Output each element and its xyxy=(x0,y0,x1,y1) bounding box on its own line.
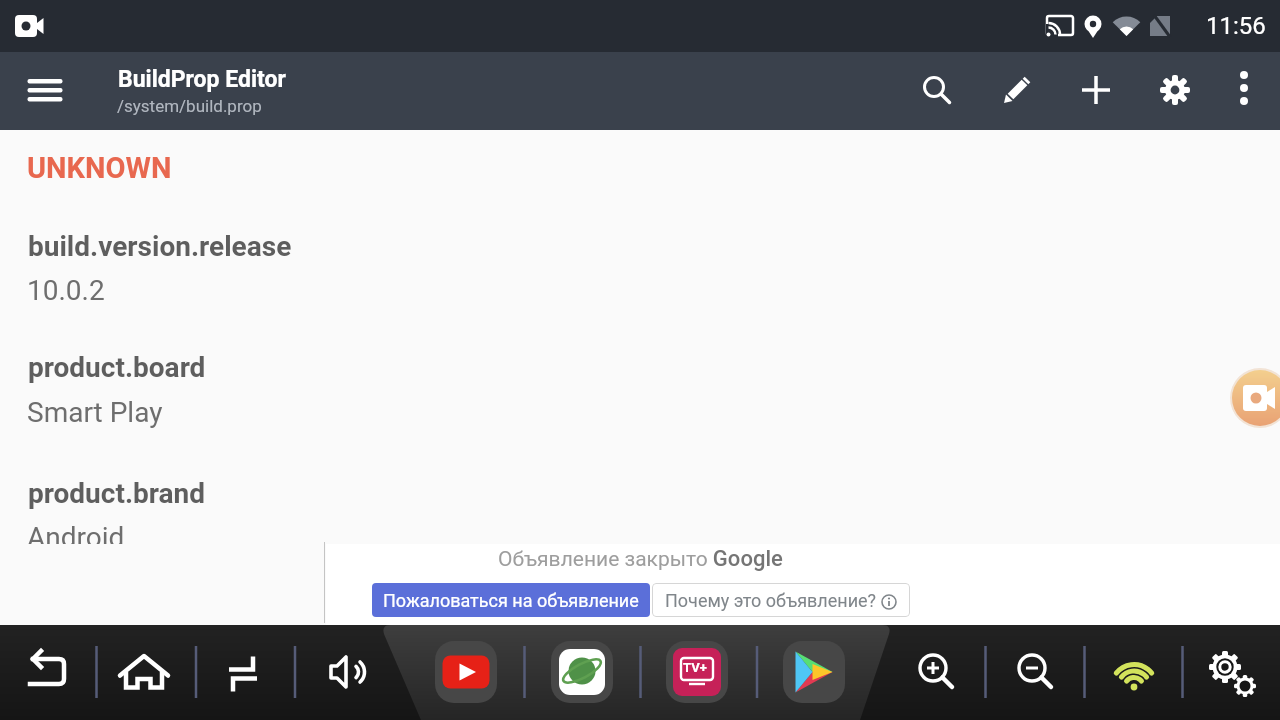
button[interactable] xyxy=(433,639,499,705)
button[interactable] xyxy=(1151,66,1199,114)
staticText: /system/build.prop xyxy=(117,96,262,116)
staticText: 11:56 xyxy=(1206,12,1266,40)
staticText: TV+ xyxy=(683,660,707,675)
button[interactable] xyxy=(13,639,79,705)
staticText: Пожаловаться на объявление xyxy=(383,590,639,611)
button[interactable] xyxy=(1100,639,1166,705)
button[interactable] xyxy=(549,639,615,705)
staticText: Почему это объявление? xyxy=(665,590,881,611)
button[interactable] xyxy=(316,639,382,705)
staticText: BuildProp Editor xyxy=(118,66,286,93)
staticText: UNKNOWN xyxy=(27,151,172,185)
button[interactable] xyxy=(913,66,961,114)
button[interactable] xyxy=(111,639,177,705)
button[interactable] xyxy=(21,66,69,114)
button[interactable] xyxy=(993,66,1041,114)
button[interactable] xyxy=(1072,66,1120,114)
button[interactable] xyxy=(1220,66,1268,114)
staticText: 10.0.2 xyxy=(27,274,105,307)
button[interactable] xyxy=(781,639,847,705)
staticText: Объявление закрыто Google xyxy=(498,546,783,572)
staticText: Android xyxy=(27,521,125,544)
button[interactable] xyxy=(1002,639,1068,705)
button[interactable]: Почему это объявление? xyxy=(652,583,910,617)
button[interactable] xyxy=(1195,639,1261,705)
staticText: product.board xyxy=(28,351,206,384)
button[interactable] xyxy=(210,639,276,705)
button[interactable] xyxy=(903,639,969,705)
button[interactable]: Пожаловаться на объявление xyxy=(372,583,650,617)
staticText: product.brand xyxy=(28,477,206,510)
staticText: build.version.release xyxy=(28,230,292,263)
button[interactable] xyxy=(664,639,730,705)
staticText: Smart Play xyxy=(27,396,163,429)
